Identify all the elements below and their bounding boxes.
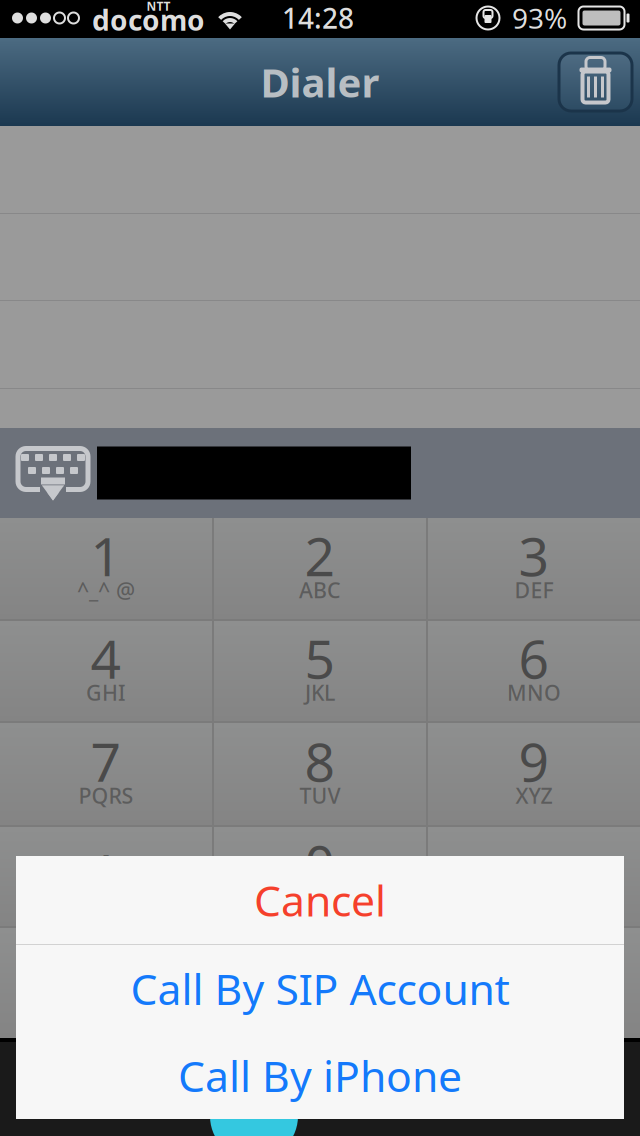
button[interactable]: 1 [0, 518, 212, 619]
staticText: PQRS [78, 781, 133, 810]
staticText: JKL [305, 678, 335, 707]
staticText: * [91, 839, 120, 910]
button[interactable] [428, 928, 640, 1038]
button[interactable]: 0 [214, 827, 426, 926]
staticText: ABC [299, 576, 341, 604]
button[interactable]: 5 [214, 621, 426, 721]
staticText: 14:28 [282, 0, 354, 37]
staticText: docomo [92, 1, 205, 39]
button[interactable]: Delete [559, 53, 632, 111]
staticText: 93% [512, 0, 567, 37]
staticText: TUV [299, 781, 340, 810]
staticText: GHI [86, 678, 126, 707]
button[interactable]: 9 [428, 723, 640, 825]
button[interactable] [214, 928, 426, 1038]
staticText: 7 [90, 726, 121, 796]
staticText: 3 [518, 520, 549, 591]
staticText: # [517, 838, 551, 909]
button[interactable]: Hide keyboard [9, 428, 97, 518]
staticText: Cancel [254, 872, 386, 928]
button[interactable]: 3 [428, 518, 640, 619]
staticText: 4 [90, 623, 121, 693]
staticText: DEF [514, 576, 553, 604]
button[interactable]: 4 [0, 621, 212, 721]
button[interactable]: 7 [0, 723, 212, 825]
staticText: MNO [507, 678, 561, 707]
button[interactable]: 6 [428, 621, 640, 721]
button[interactable]: Call By SIP Account [16, 945, 624, 1032]
staticText: XYZ [515, 781, 552, 810]
button[interactable]: * [0, 827, 212, 926]
button[interactable]: 2 [214, 518, 426, 619]
button[interactable]: Cancel [16, 856, 624, 944]
staticText: 0 [304, 828, 335, 899]
button[interactable]: Call [210, 1072, 298, 1136]
staticText: Dialer [260, 55, 379, 108]
staticText: NTT [146, 0, 170, 14]
staticText: 5 [304, 623, 335, 693]
staticText: + [314, 884, 326, 912]
staticText: 9 [518, 726, 549, 796]
button[interactable]: 8 [214, 723, 426, 825]
button[interactable] [0, 928, 212, 1038]
staticText: 8 [304, 726, 335, 796]
button[interactable]: # [428, 827, 640, 926]
staticText: 1 [90, 520, 121, 591]
button[interactable]: Call By iPhone [16, 1032, 624, 1119]
staticText: Call By iPhone [178, 1047, 462, 1104]
staticText: Call By SIP Account [130, 960, 509, 1017]
staticText: ^_^ @ [77, 576, 135, 604]
staticText: 6 [518, 623, 549, 693]
staticText: 2 [304, 520, 335, 591]
